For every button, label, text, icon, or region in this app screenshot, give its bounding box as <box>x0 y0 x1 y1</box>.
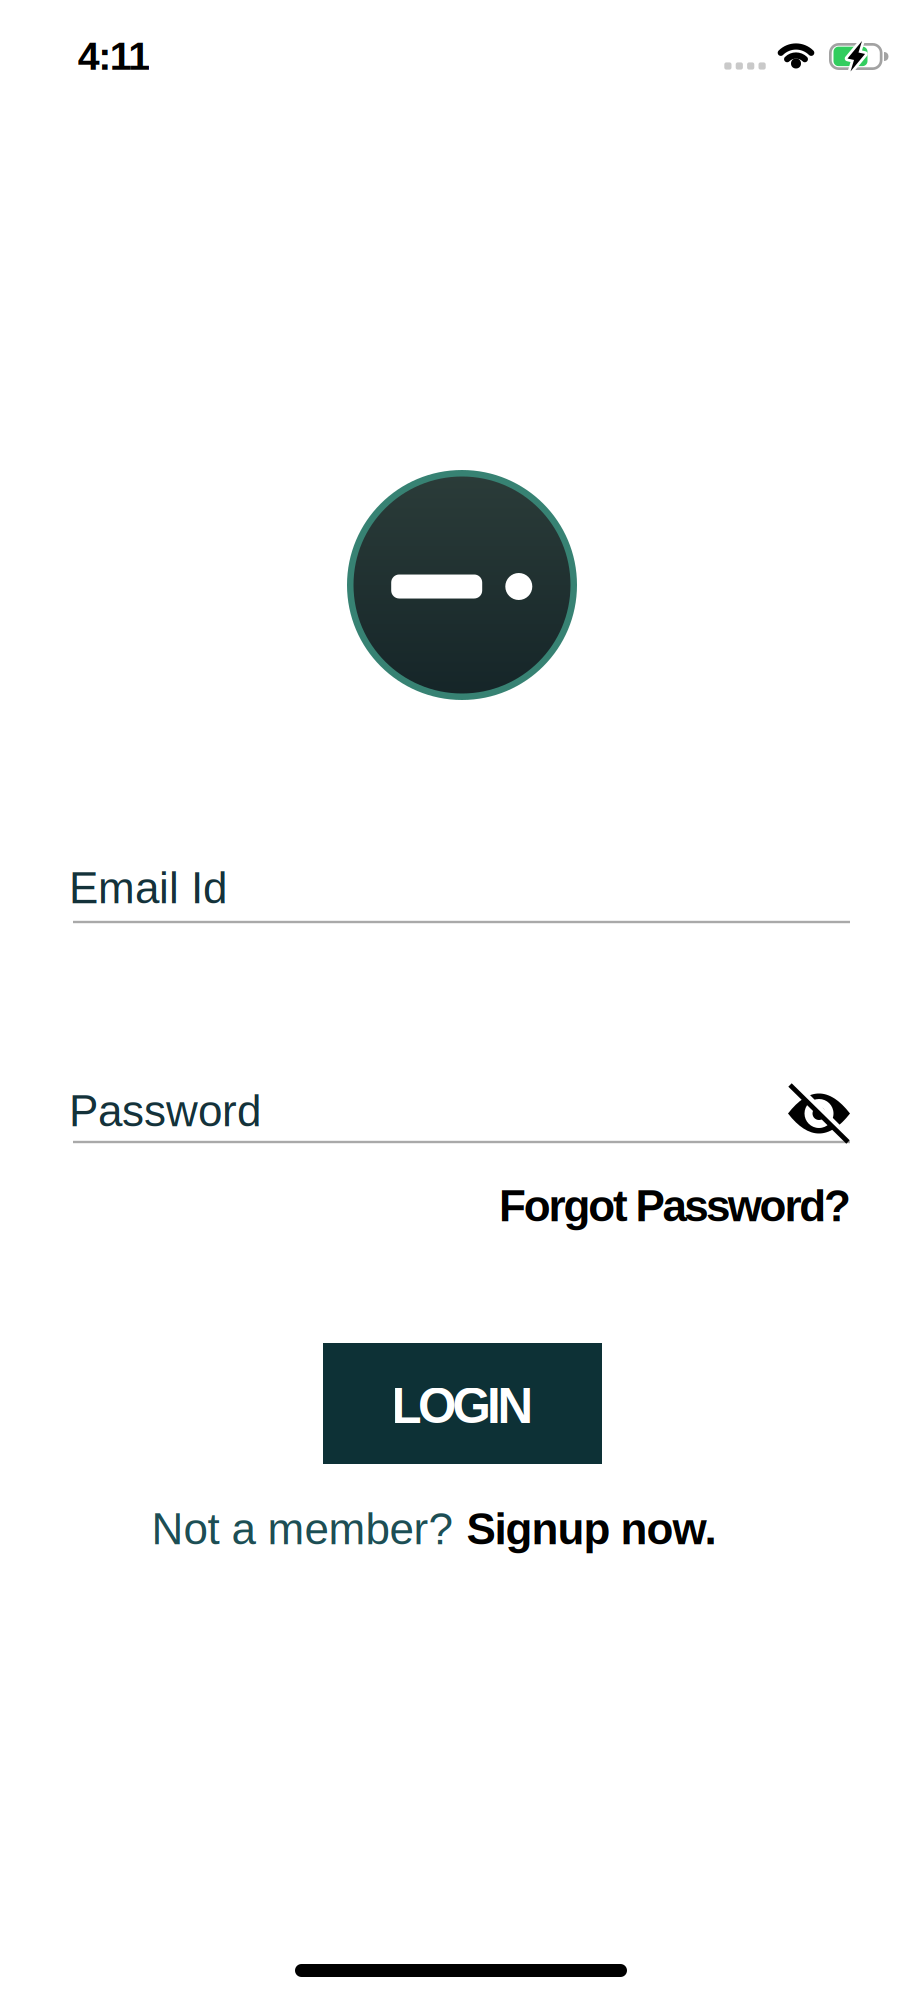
staticText: 4:11 <box>78 34 150 78</box>
button[interactable]: Email Id <box>73 854 851 946</box>
button[interactable]: Not a member? <box>151 1504 716 1554</box>
staticText: Password <box>69 1086 261 1136</box>
button[interactable]: Forgot Password? <box>499 1181 851 1231</box>
staticText: Forgot Password? <box>499 1181 851 1231</box>
button[interactable]: Password <box>73 1074 851 1166</box>
button[interactable]: Show password <box>788 1082 850 1144</box>
staticText: Email Id <box>69 863 227 913</box>
staticText: LOGIN <box>391 1378 533 1433</box>
button[interactable]: LOGIN <box>323 1343 602 1464</box>
staticText: Not a member? <box>151 1504 452 1554</box>
staticText: Signup now. <box>466 1504 716 1554</box>
